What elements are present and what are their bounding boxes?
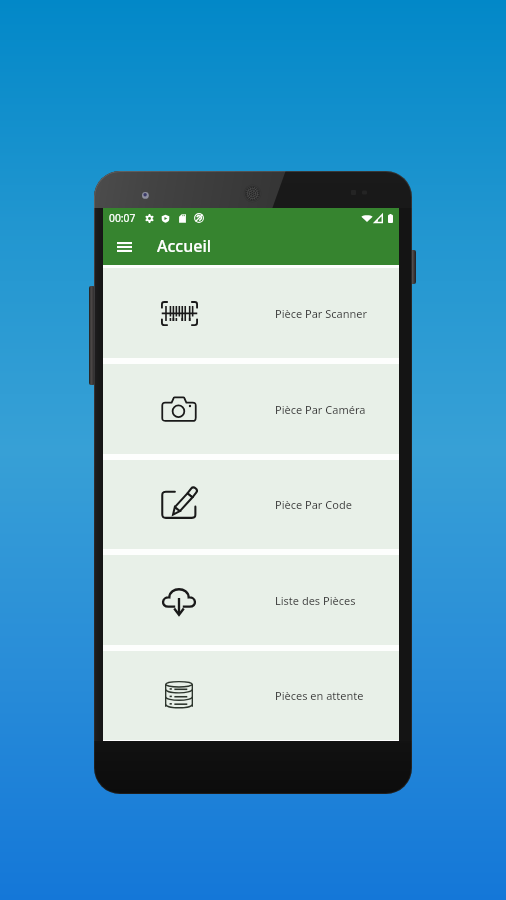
- staticText: 00:07: [109, 211, 136, 225]
- staticText: Pièce Par Code: [275, 497, 352, 512]
- button[interactable]: Pièce Par Scanner: [103, 268, 399, 358]
- button[interactable]: Open navigation menu: [107, 230, 141, 264]
- staticText: Pièces en attente: [275, 688, 364, 703]
- staticText: Accueil: [157, 235, 212, 257]
- button[interactable]: Pièce Par Caméra: [103, 364, 399, 454]
- staticText: Liste des Pièces: [275, 593, 356, 608]
- button[interactable]: Pièce Par Code: [103, 460, 399, 549]
- button[interactable]: Liste des Pièces: [103, 555, 399, 645]
- staticText: Pièce Par Caméra: [275, 402, 366, 417]
- staticText: Pièce Par Scanner: [275, 306, 368, 321]
- button[interactable]: Pièces en attente: [103, 651, 399, 740]
